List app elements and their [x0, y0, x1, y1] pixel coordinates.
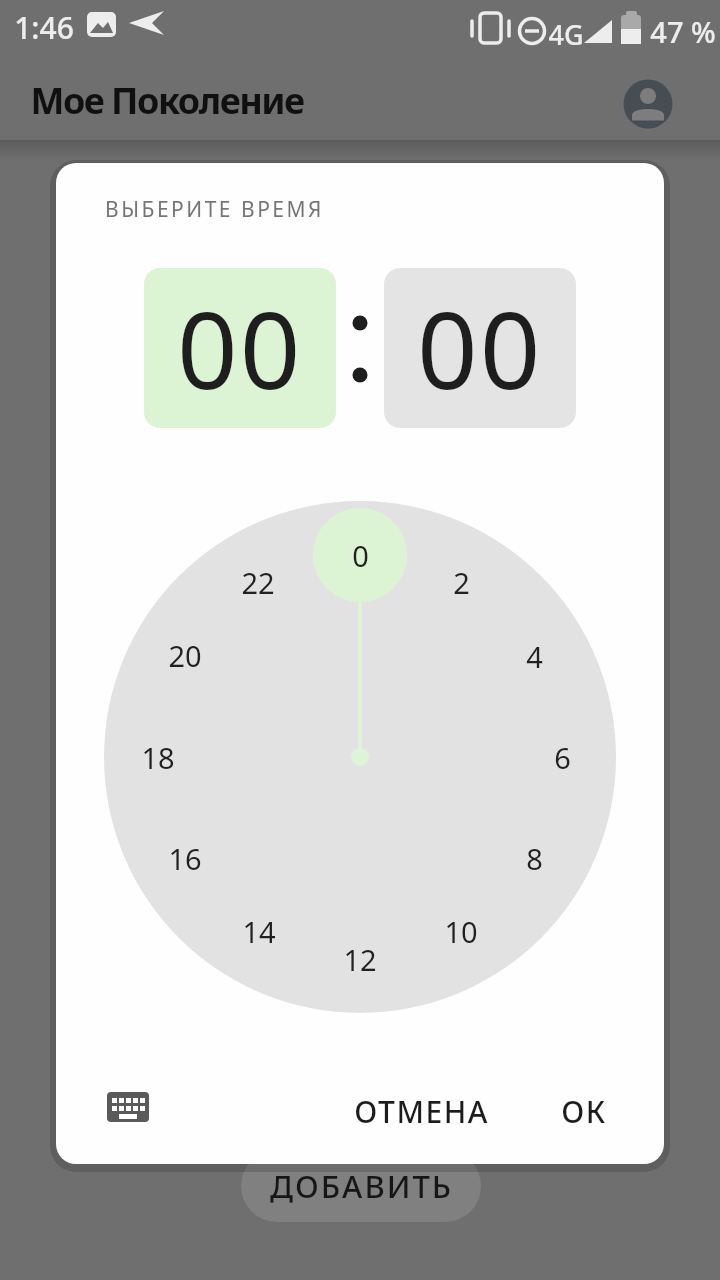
button[interactable] [100, 1081, 156, 1133]
button[interactable]: 00 [384, 268, 576, 428]
button[interactable]: ОТМЕНА [346, 1088, 496, 1134]
staticText: 1:46 [14, 7, 74, 48]
staticText: 2 [453, 563, 470, 602]
button[interactable]: 18 [124, 735, 192, 779]
staticText: 12 [343, 940, 377, 979]
button[interactable]: 12 [326, 937, 394, 981]
staticText: 8 [526, 839, 543, 878]
staticText: 00 [177, 276, 303, 420]
staticText: 14 [242, 912, 276, 951]
staticText: ОК [561, 1091, 607, 1132]
staticText: 00 [417, 276, 543, 420]
button[interactable]: 16 [151, 836, 219, 880]
staticText: ДОБАВИТЬ [270, 1165, 453, 1207]
button[interactable]: 6 [528, 735, 596, 779]
button[interactable]: 22 [224, 560, 292, 604]
button[interactable]: 20 [151, 633, 219, 677]
staticText: 18 [141, 738, 175, 777]
button[interactable]: 14 [225, 909, 293, 953]
staticText: 47 % [650, 12, 716, 51]
button[interactable]: 2 [427, 560, 495, 604]
staticText: 16 [168, 839, 202, 878]
staticText: 4 [526, 637, 543, 676]
button[interactable] [623, 79, 673, 129]
staticText: 6 [554, 738, 571, 777]
staticText: ОТМЕНА [354, 1091, 489, 1132]
button[interactable]: 00 [144, 268, 336, 428]
staticText: 4G [548, 16, 584, 46]
staticText: Мое Поколение [30, 76, 304, 125]
button[interactable]: ДОБАВИТЬ [241, 1150, 481, 1222]
button[interactable]: 10 [427, 909, 495, 953]
button[interactable]: 4 [500, 634, 568, 678]
button[interactable]: 8 [500, 836, 568, 880]
staticText: ВЫБЕРИТЕ ВРЕМЯ [105, 195, 324, 224]
button[interactable]: ОК [544, 1088, 624, 1134]
button[interactable]: 0 [326, 533, 394, 577]
staticText: 20 [168, 636, 202, 675]
staticText: 22 [241, 563, 275, 602]
staticText: 0 [352, 536, 369, 575]
staticText: 10 [444, 912, 478, 951]
